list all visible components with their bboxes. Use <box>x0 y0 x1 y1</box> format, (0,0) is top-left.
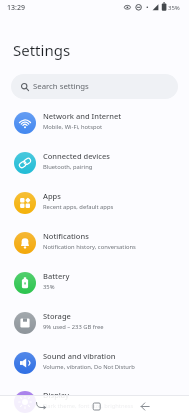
staticText: Storage <box>43 311 71 321</box>
staticText: Sound and vibration <box>43 351 116 361</box>
button[interactable]: Network and Internet <box>0 103 189 143</box>
button[interactable]: Connected devices <box>0 143 189 183</box>
button[interactable]: Sound and vibration <box>0 343 189 383</box>
staticText: Notifications <box>43 231 89 241</box>
staticText: 35% <box>168 4 180 12</box>
button[interactable]: Search settings <box>11 74 178 99</box>
staticText: Recent apps, default apps <box>43 203 114 211</box>
staticText: Battery <box>43 271 70 281</box>
button[interactable]: Display <box>0 383 189 420</box>
button[interactable] <box>126 395 189 420</box>
staticText: Connected devices <box>43 151 110 161</box>
staticText: 9% used – 233 GB free <box>43 323 104 331</box>
staticText: Display <box>43 390 70 400</box>
staticText: Dark theme, font size, brightness <box>43 402 134 410</box>
staticText: Mobile, Wi-Fi, hotspot <box>43 123 103 131</box>
button[interactable] <box>63 395 126 420</box>
button[interactable] <box>0 395 63 420</box>
staticText: 13:29 <box>7 3 25 13</box>
staticText: Settings <box>13 40 71 60</box>
staticText: Bluetooth, pairing <box>43 163 93 171</box>
staticText: Notification history, conversations <box>43 243 136 251</box>
button[interactable]: Apps <box>0 183 189 223</box>
button[interactable]: Storage <box>0 303 189 343</box>
staticText: Network and Internet <box>43 111 122 121</box>
staticText: Search settings <box>33 81 89 92</box>
button[interactable]: Notifications <box>0 223 189 263</box>
button[interactable]: Battery <box>0 263 189 303</box>
staticText: Apps <box>43 191 61 201</box>
staticText: Volume, vibration, Do Not Disturb <box>43 363 135 371</box>
staticText: 35% <box>43 283 55 291</box>
